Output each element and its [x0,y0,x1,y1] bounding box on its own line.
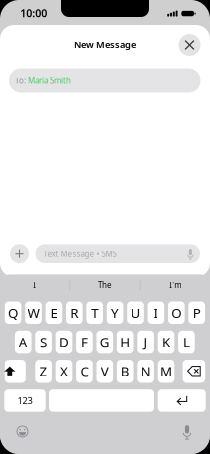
staticText: Z [40,362,48,380]
staticText: Text Message • SMS [43,248,116,259]
staticText: A [19,333,28,351]
button[interactable]: S [35,331,52,353]
staticText: P [193,304,201,322]
button[interactable]: A [15,331,31,353]
button[interactable]: Z [35,360,52,382]
staticText: H [120,333,130,351]
staticText: X [60,362,68,380]
staticText: D [59,333,69,351]
staticText: New Message [74,38,136,51]
staticText: The [98,280,112,290]
staticText: 123 [17,394,32,407]
button[interactable]: Q [5,301,21,324]
button[interactable]: Dictate [176,420,198,442]
button[interactable]: C [76,360,93,382]
button[interactable]: L [178,331,195,353]
button[interactable]: W [25,301,42,324]
staticText: B [121,362,130,380]
staticText: W [27,304,39,322]
button[interactable]: U [127,301,144,324]
staticText: I [153,304,158,322]
button[interactable]: To: [9,68,200,92]
staticText: U [130,304,140,322]
button[interactable]: M [158,360,174,382]
staticText: M [160,362,172,380]
staticText: K [162,333,170,351]
staticText: Maria Smith [28,75,71,86]
staticText: Q [8,304,18,322]
staticText: 10:00 [20,6,47,20]
staticText: S [40,333,47,351]
button[interactable]: Close [178,34,200,56]
staticText: F [81,333,88,351]
button[interactable]: Y [107,301,123,324]
button[interactable]: Shift [5,360,26,382]
staticText: L [183,333,190,351]
button[interactable] [49,389,154,412]
button[interactable]: Emoji [11,420,33,442]
button[interactable]: I [0,274,70,296]
staticText: C [80,362,88,380]
button[interactable]: The [70,274,140,296]
staticText: To: [15,75,28,86]
button[interactable]: B [117,360,133,382]
button[interactable]: Return [158,389,206,412]
staticText: J [144,333,148,351]
button[interactable]: Delete [183,360,205,382]
staticText: Y [111,304,119,322]
staticText: I'm [169,280,181,290]
button[interactable]: Text Message • SMS [35,244,200,263]
button[interactable]: R [66,301,83,324]
button[interactable]: Add attachment [10,244,29,263]
button[interactable]: N [137,360,154,382]
button[interactable]: G [96,331,113,353]
staticText: E [50,304,57,322]
button[interactable]: V [96,360,113,382]
button[interactable]: K [158,331,174,353]
button[interactable]: O [168,301,185,324]
staticText: I [33,280,36,290]
button[interactable]: F [76,331,93,353]
staticText: V [101,362,109,380]
button[interactable]: 123 [4,389,46,412]
staticText: O [171,304,181,322]
staticText: T [91,304,98,322]
button[interactable]: I'm [140,274,210,296]
button[interactable]: E [46,301,62,324]
button[interactable]: H [117,331,133,353]
button[interactable]: P [188,301,205,324]
button[interactable]: J [137,331,154,353]
staticText: G [100,333,110,351]
staticText: R [70,304,78,322]
staticText: N [141,362,151,380]
button[interactable]: X [56,360,72,382]
button[interactable]: I [148,301,164,324]
button[interactable]: T [86,301,103,324]
button[interactable]: D [56,331,72,353]
